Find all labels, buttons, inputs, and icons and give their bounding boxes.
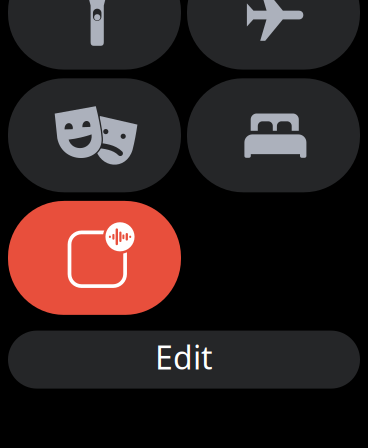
button[interactable]: Edit [8, 331, 360, 389]
button[interactable]: Theater Mode [8, 78, 181, 192]
button[interactable]: Walkie-Talkie [8, 201, 181, 315]
button[interactable]: Airplane Mode [187, 0, 360, 70]
staticText: Edit [155, 336, 213, 378]
button[interactable]: Sleep Mode [187, 78, 360, 192]
button[interactable]: Flashlight [8, 0, 181, 70]
